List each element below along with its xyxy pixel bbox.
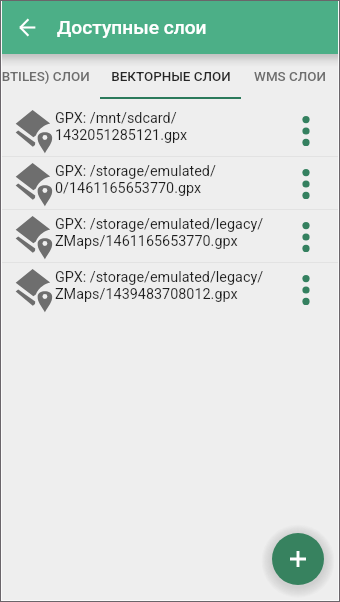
button[interactable]: More options xyxy=(273,157,338,210)
staticText: GPX: /mnt/sdcard/ xyxy=(55,110,177,127)
staticText: WMS СЛОИ xyxy=(254,69,326,85)
button[interactable]: GPX: /storage/emulated/legacy/ xyxy=(0,210,340,263)
button[interactable]: (MBTILES) СЛОИ xyxy=(0,55,102,99)
button[interactable]: GPX: /storage/emulated/ xyxy=(0,157,340,210)
staticText: ВЕКТОРНЫЕ СЛОИ xyxy=(111,69,231,85)
staticText: 1432051285121.gpx xyxy=(55,127,188,144)
staticText: 0/1461165653770.gpx xyxy=(55,180,202,197)
staticText: Доступные слои xyxy=(57,16,207,39)
button[interactable]: More options xyxy=(273,210,338,263)
button[interactable]: Back xyxy=(0,0,54,54)
staticText: ZMaps/1461165653770.gpx xyxy=(55,233,238,250)
staticText: GPX: /storage/emulated/legacy/ xyxy=(55,216,264,233)
button[interactable]: More options xyxy=(273,263,338,316)
button[interactable]: Add layer xyxy=(272,533,324,585)
button[interactable]: More options xyxy=(273,104,338,157)
button[interactable]: WMS СЛОИ xyxy=(240,55,340,99)
staticText: GPX: /storage/emulated/ xyxy=(55,163,216,180)
button[interactable]: GPX: /storage/emulated/legacy/ xyxy=(0,263,340,316)
staticText: ZMaps/1439483708012.gpx xyxy=(55,286,238,303)
staticText: GPX: /storage/emulated/legacy/ xyxy=(55,269,264,286)
button[interactable]: GPX: /mnt/sdcard/ xyxy=(0,104,340,157)
button[interactable]: ВЕКТОРНЫЕ СЛОИ xyxy=(101,55,241,99)
staticText: (MBTILES) СЛОИ xyxy=(0,69,90,85)
